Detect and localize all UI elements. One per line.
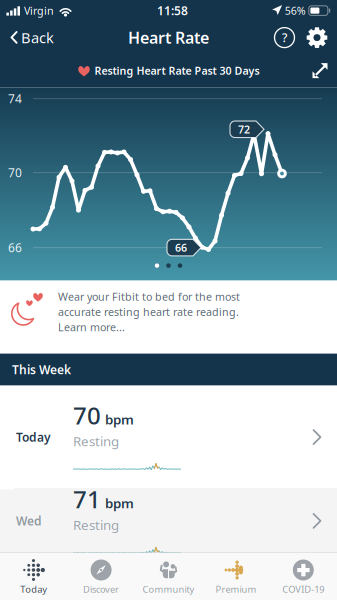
staticText: Community [142, 583, 194, 595]
staticText: 74 [8, 91, 22, 106]
button[interactable]: Premium [202, 554, 270, 599]
button[interactable]: Back [4, 21, 62, 55]
staticText: Today [16, 429, 51, 445]
staticText: 66 [175, 240, 187, 255]
button[interactable]: Wear your Fitbit to bed for the most [0, 281, 337, 354]
staticText: Today [20, 583, 47, 595]
staticText: Back [21, 28, 54, 47]
staticText: Resting [73, 516, 119, 534]
staticText: 11:58 [157, 3, 188, 18]
staticText: Virgin [24, 3, 54, 18]
button[interactable]: Expand chart [303, 56, 337, 86]
button[interactable]: Help [268, 21, 301, 55]
staticText: Discover [83, 583, 119, 595]
staticText: Wear your Fitbit to bed for the most [58, 290, 240, 304]
staticText: Heart Rate [128, 27, 209, 48]
staticText: Resting Heart Rate Past 30 Days [94, 63, 259, 78]
button[interactable]: Community [135, 554, 202, 599]
staticText: Premium [215, 583, 256, 595]
staticText: 66 [8, 240, 22, 255]
staticText: 70 [73, 399, 101, 431]
button[interactable]: Today [0, 386, 337, 489]
staticText: bpm [105, 410, 134, 428]
button[interactable]: COVID-19 [270, 554, 337, 599]
staticText: 71 [73, 483, 101, 515]
staticText: This Week [12, 362, 71, 377]
button[interactable]: Today [0, 554, 67, 599]
staticText: Resting [73, 432, 119, 450]
button[interactable]: Discover [67, 554, 135, 599]
staticText: 70 [8, 165, 22, 180]
staticText: 56% [285, 3, 306, 18]
staticText: 72 [238, 122, 250, 136]
staticText: Learn more... [58, 320, 125, 334]
staticText: COVID-19 [282, 583, 324, 595]
button[interactable]: Settings [301, 21, 333, 55]
staticText: accurate resting heart rate reading. [58, 305, 239, 319]
staticText: Wed [16, 513, 42, 529]
staticText: bpm [105, 494, 134, 512]
staticText: ? [282, 30, 287, 45]
button[interactable]: Wed [0, 489, 337, 552]
